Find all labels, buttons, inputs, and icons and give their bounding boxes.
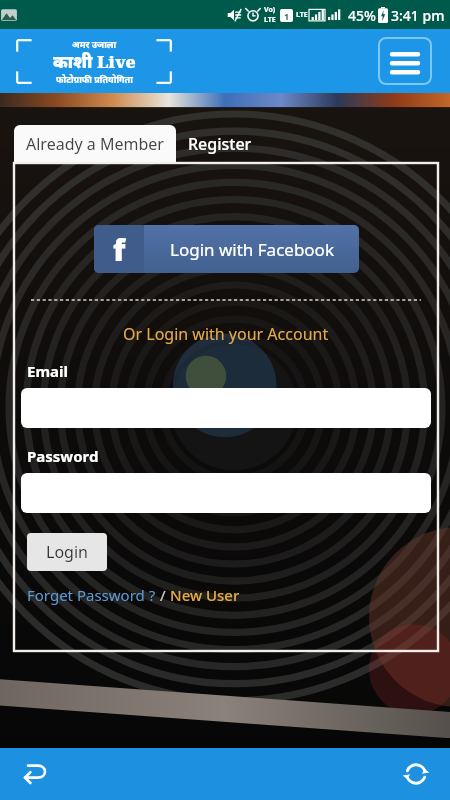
button[interactable]: f: [94, 225, 359, 273]
staticText: Forget Password ?: [27, 585, 156, 605]
staticText: Vo): [264, 5, 276, 15]
staticText: f: [113, 229, 126, 270]
staticText: New User: [170, 585, 240, 605]
staticText: Login with Facebook: [170, 238, 334, 261]
staticText: Password: [27, 446, 99, 466]
staticText: Already a Member: [26, 133, 164, 155]
staticText: Live: [97, 50, 136, 73]
button[interactable]: Text input: [21, 388, 431, 428]
staticText: Login: [46, 541, 88, 563]
staticText: फोटोग्राफी प्रतियोगिता: [56, 73, 133, 85]
button[interactable]: Login: [27, 533, 107, 571]
button[interactable]: Already a Member: [14, 125, 176, 163]
staticText: 3:41 pm: [391, 6, 445, 25]
button[interactable]: Menu: [378, 37, 432, 85]
staticText: /: [156, 585, 170, 605]
staticText: Email: [27, 361, 68, 381]
staticText: 1: [284, 10, 290, 22]
staticText: LTE: [296, 10, 308, 20]
button[interactable]: Back: [12, 752, 56, 796]
button[interactable]: Refresh: [394, 752, 438, 796]
button[interactable]: Text input: [21, 473, 431, 513]
button[interactable]: Register: [176, 125, 264, 163]
staticText: LTE: [264, 15, 276, 25]
staticText: Register: [188, 133, 252, 155]
button[interactable]: Amar Ujala Kashi Live logo: [14, 35, 174, 87]
staticText: अमर उजाला: [72, 38, 117, 50]
staticText: काशी: [53, 50, 97, 73]
button[interactable]: Forget Password ?: [27, 585, 156, 605]
staticText: Or Login with your Account: [123, 323, 329, 345]
button[interactable]: New User: [170, 585, 240, 605]
staticText: 45%: [348, 6, 376, 25]
